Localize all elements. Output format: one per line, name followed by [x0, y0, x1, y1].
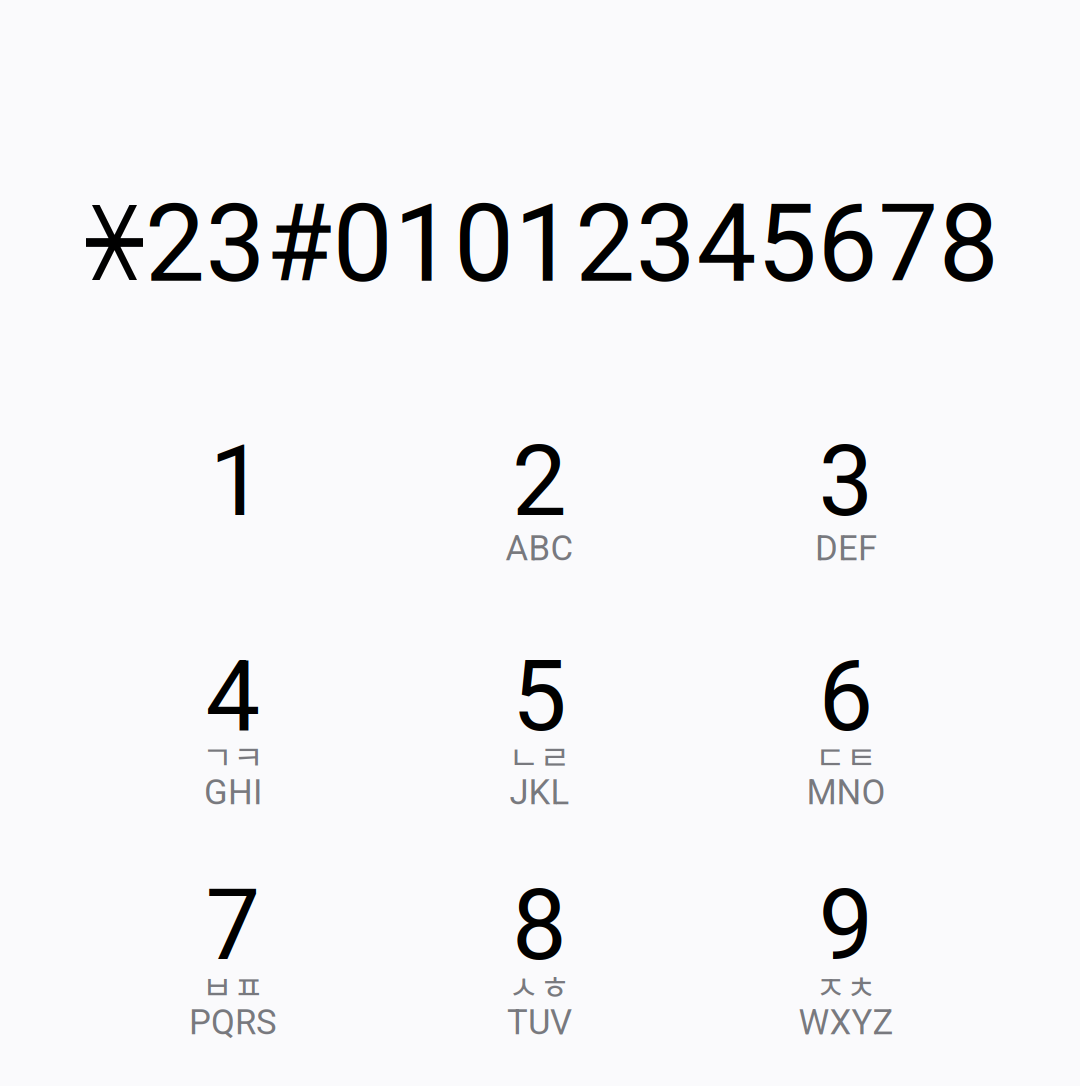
- staticText: ABC: [505, 524, 573, 575]
- staticText: 1: [209, 413, 264, 556]
- button[interactable]: 1: [80, 388, 386, 617]
- staticText: 7: [205, 857, 260, 1000]
- staticText: JKL: [509, 768, 569, 819]
- staticText: 2: [512, 413, 567, 556]
- button[interactable]: 5 JKL: [386, 617, 692, 846]
- staticText: 23#01012345678: [145, 169, 999, 326]
- button[interactable]: 7 PQRS: [80, 846, 386, 1075]
- button[interactable]: Entered number ✳23#01012345678: [86, 203, 994, 363]
- staticText: 6: [818, 628, 873, 771]
- staticText: GHI: [204, 768, 262, 819]
- staticText: 8: [512, 857, 567, 1000]
- button[interactable]: 9 WXYZ: [693, 846, 999, 1075]
- staticText: WXYZ: [798, 998, 893, 1049]
- staticText: PQRS: [189, 998, 277, 1049]
- button[interactable]: 2 ABC: [386, 388, 692, 617]
- staticText: ㄱㅋ: [202, 731, 264, 779]
- staticText: 5: [512, 628, 567, 771]
- staticText: ㄷㅌ: [815, 731, 877, 779]
- staticText: ㅂㅍ: [202, 961, 264, 1009]
- staticText: DEF: [815, 524, 877, 575]
- button[interactable]: 8 TUV: [386, 846, 692, 1075]
- staticText: TUV: [507, 998, 572, 1049]
- staticText: 4: [205, 628, 260, 771]
- button[interactable]: 4 GHI: [80, 617, 386, 846]
- button[interactable]: 6 MNO: [693, 617, 999, 846]
- staticText: MNO: [806, 768, 885, 819]
- staticText: 3: [818, 413, 873, 556]
- button[interactable]: 3 DEF: [693, 388, 999, 617]
- staticText: ㄴㄹ: [508, 731, 570, 779]
- staticText: ㅈㅊ: [815, 961, 877, 1009]
- staticText: ㅅㅎ: [508, 961, 570, 1009]
- staticText: 9: [818, 857, 873, 1000]
